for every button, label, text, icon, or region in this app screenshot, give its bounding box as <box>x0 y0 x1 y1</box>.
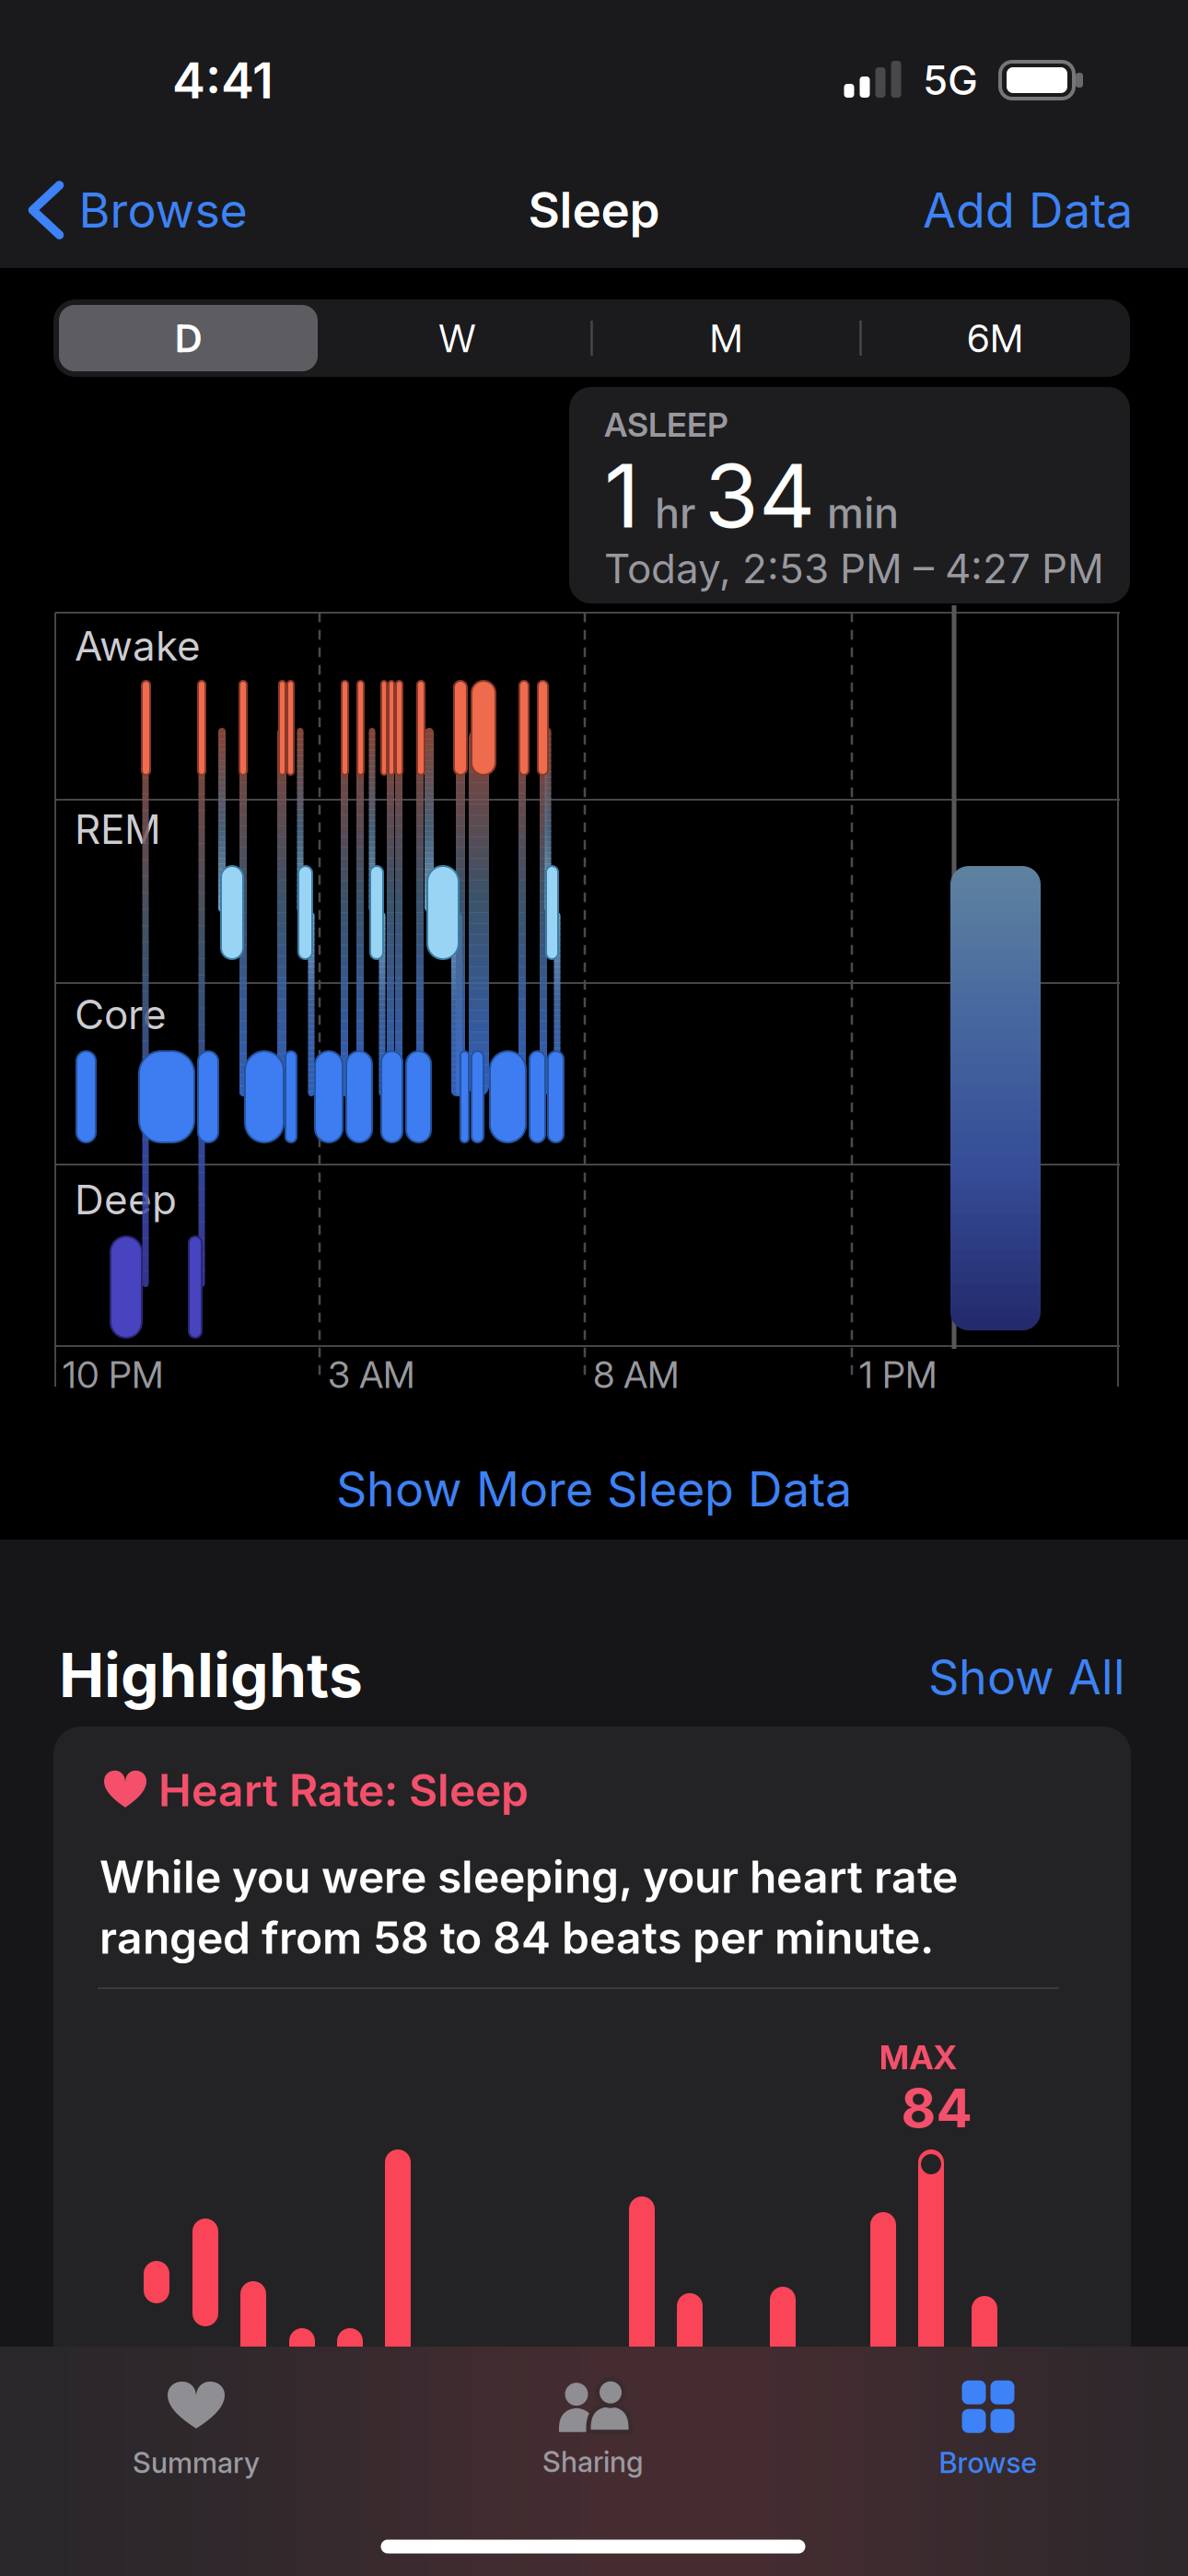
staticText: M <box>710 315 743 361</box>
staticText: 10 PM <box>63 1353 163 1396</box>
staticText: 84 <box>901 2076 972 2139</box>
button[interactable]: D <box>59 305 318 371</box>
button[interactable]: Heart Rate: Sleep <box>53 1727 1131 2537</box>
staticText: Show All <box>928 1649 1125 1705</box>
staticText: Sleep <box>528 181 660 239</box>
staticText: Today, 2:53 PM – 4:27 PM <box>604 544 1104 592</box>
staticText: 5G <box>923 56 978 104</box>
staticText: min <box>827 489 899 538</box>
staticText: Show More Sleep Data <box>336 1461 852 1517</box>
staticText: ASLEEP <box>604 405 728 444</box>
staticText: 1 PM <box>859 1353 937 1396</box>
staticText: Deep <box>75 1176 177 1223</box>
staticText: Highlights <box>59 1639 363 1711</box>
staticText: REM <box>75 805 161 853</box>
button[interactable]: 6M <box>866 301 1124 375</box>
staticText: W <box>439 315 476 361</box>
button[interactable]: W <box>328 301 586 375</box>
staticText: MAX <box>879 2038 957 2077</box>
staticText: 1 <box>604 444 640 547</box>
staticText: Heart Rate: Sleep <box>158 1764 529 1816</box>
button[interactable]: Show More Sleep Data <box>336 1461 852 1517</box>
staticText: Add Data <box>923 182 1133 238</box>
button[interactable]: M <box>597 301 855 375</box>
button[interactable]: Browse <box>33 182 247 238</box>
staticText: D <box>175 315 202 361</box>
staticText: ranged from 58 to 84 beats per minute. <box>99 1911 934 1964</box>
button[interactable]: Show All <box>849 1649 1125 1705</box>
staticText: Browse <box>79 182 247 238</box>
button[interactable]: Browse <box>939 2379 1037 2480</box>
button[interactable]: Add Data <box>875 182 1133 238</box>
staticText: Summary <box>133 2446 260 2480</box>
staticText: 34 <box>705 444 815 547</box>
staticText: 3 AM <box>328 1353 414 1396</box>
staticText: 4:41 <box>172 51 274 109</box>
staticText: Core <box>75 990 167 1038</box>
staticText: 6M <box>967 315 1023 361</box>
staticText: While you were sleeping, your heart rate <box>99 1851 958 1903</box>
staticText: Sharing <box>542 2445 644 2479</box>
button[interactable]: Sharing <box>542 2380 644 2479</box>
staticText: Browse <box>939 2446 1037 2480</box>
staticText: hr <box>655 489 695 538</box>
staticText: 8 AM <box>593 1353 679 1396</box>
button[interactable]: Summary <box>133 2379 260 2480</box>
staticText: Awake <box>75 622 201 670</box>
